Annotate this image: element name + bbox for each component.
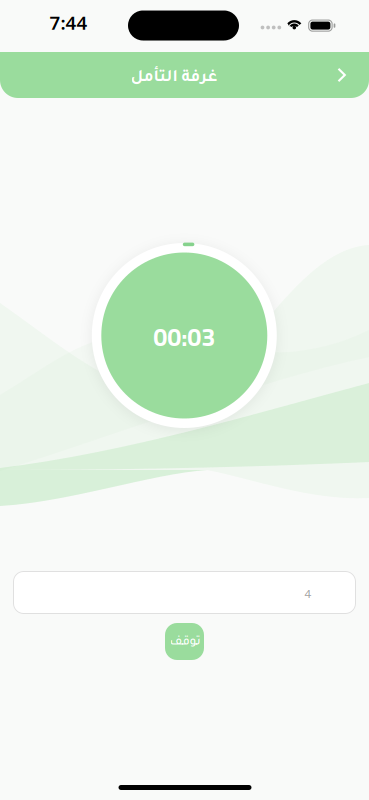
staticText: توقف (169, 636, 200, 649)
button[interactable]: توقف (165, 623, 204, 660)
staticText: غرفة التأمل (130, 70, 217, 87)
staticText: 7:44 (49, 10, 87, 35)
staticText: 4 (304, 589, 311, 603)
staticText: 00:03 (153, 313, 215, 361)
button[interactable]: غرفة التأمل (0, 52, 369, 98)
button[interactable]: مدة التأمل بالدقائق (13, 571, 356, 614)
